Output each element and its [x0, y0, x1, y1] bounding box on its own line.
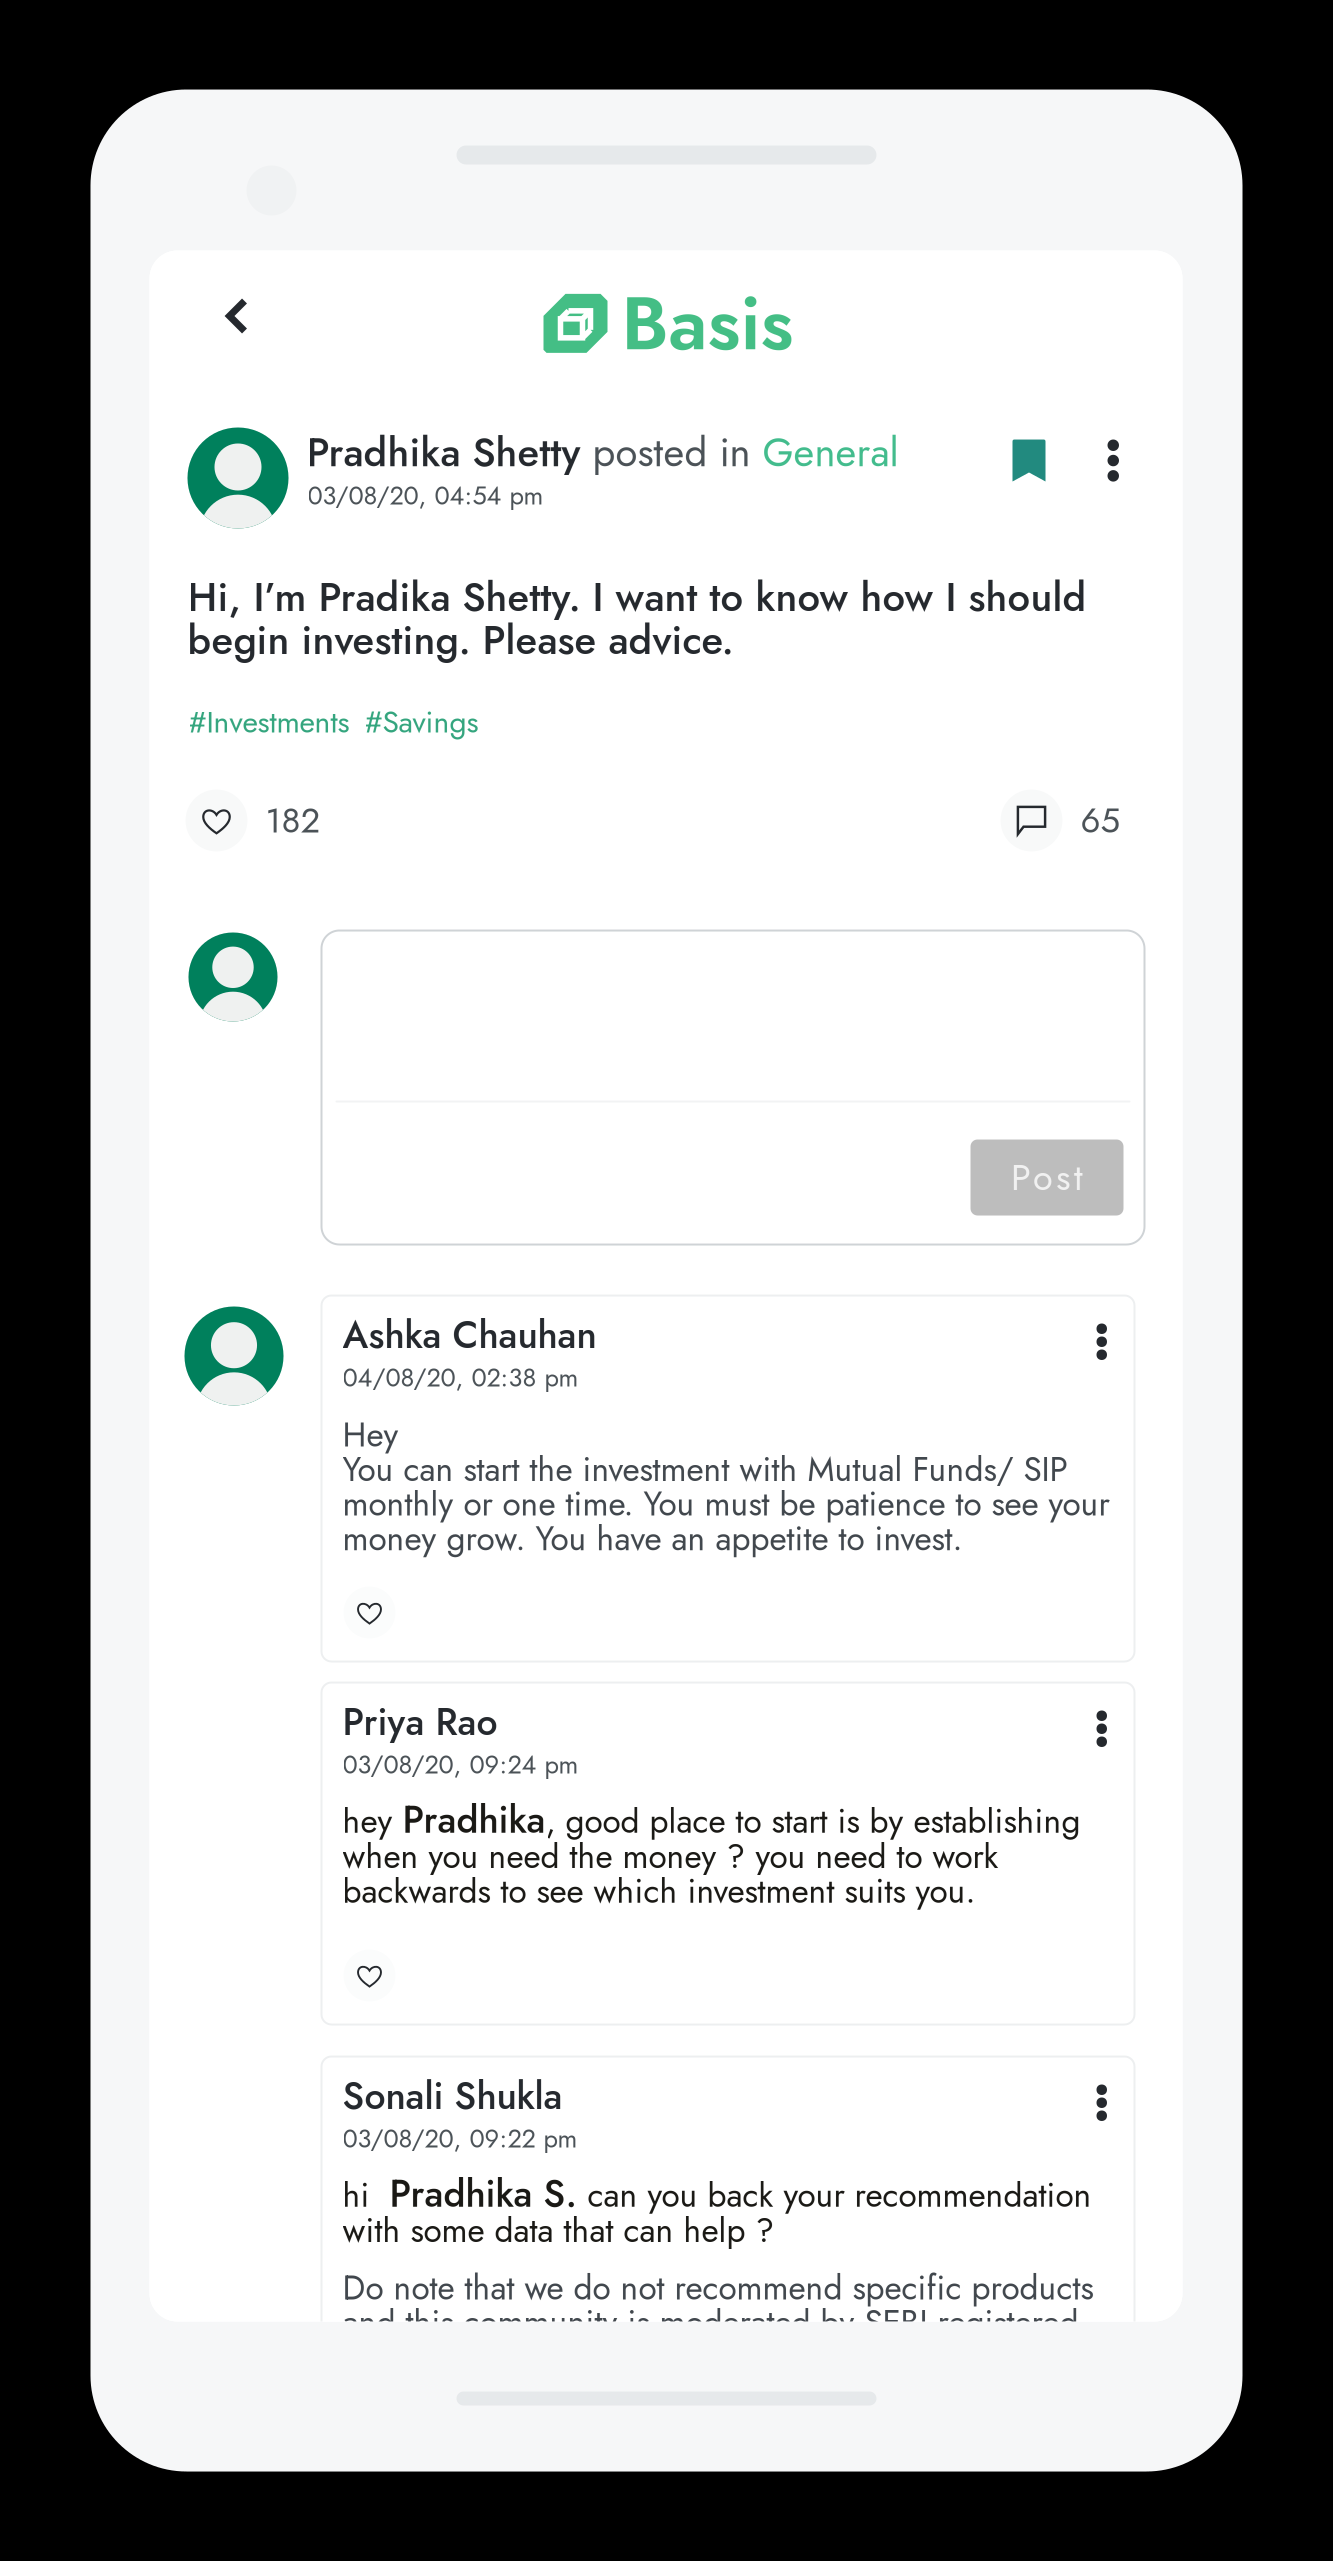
- staticText: Hi, I’m Pradika Shetty. I want to know h…: [187, 575, 1086, 662]
- staticText: Priya Rao: [342, 1702, 497, 1741]
- staticText: 65: [1080, 802, 1120, 839]
- button[interactable]: More options: [1083, 425, 1143, 496]
- staticText: 03/08/20, 04:54 pm: [307, 482, 543, 509]
- staticText: hi Pradhika S. can you back your recomme…: [342, 2174, 1091, 2248]
- staticText: 03/08/20, 09:22 pm: [342, 2125, 577, 2152]
- staticText: General: [762, 431, 898, 473]
- button[interactable]: Back: [201, 279, 272, 352]
- staticText: Pradhika Shetty: [306, 431, 580, 473]
- staticText: #Savings: [364, 706, 478, 738]
- button[interactable]: More options: [1080, 1698, 1123, 1759]
- staticText: Ashka Chauhan: [342, 1315, 596, 1354]
- staticText: Hey You can start the investment with Mu…: [342, 1417, 1109, 1556]
- button[interactable]: More options: [1080, 2072, 1123, 2133]
- button[interactable]: More options: [1080, 1311, 1123, 1372]
- staticText: 03/08/20, 09:24 pm: [342, 1751, 578, 1778]
- button[interactable]: Like: [343, 1949, 395, 2001]
- staticText: 182: [265, 802, 320, 839]
- staticText: 04/08/20, 02:38 pm: [342, 1364, 578, 1391]
- button[interactable]: 65: [1000, 789, 1120, 851]
- staticText: Post: [1011, 1159, 1083, 1196]
- staticText: Basis: [621, 284, 793, 362]
- button[interactable]: Like: [343, 1586, 395, 1638]
- button[interactable]: Bookmark: [998, 425, 1059, 495]
- staticText: posted in: [580, 431, 762, 473]
- staticText: hey Pradhika, good place to start is by …: [342, 1800, 1080, 1908]
- staticText: Sonali Shukla: [342, 2076, 562, 2115]
- button[interactable]: Post: [970, 1139, 1123, 1215]
- button[interactable]: 182: [185, 789, 320, 851]
- staticText: #Investments: [188, 706, 349, 738]
- staticText: Do note that we do not recommend specifi…: [342, 2270, 1093, 2340]
